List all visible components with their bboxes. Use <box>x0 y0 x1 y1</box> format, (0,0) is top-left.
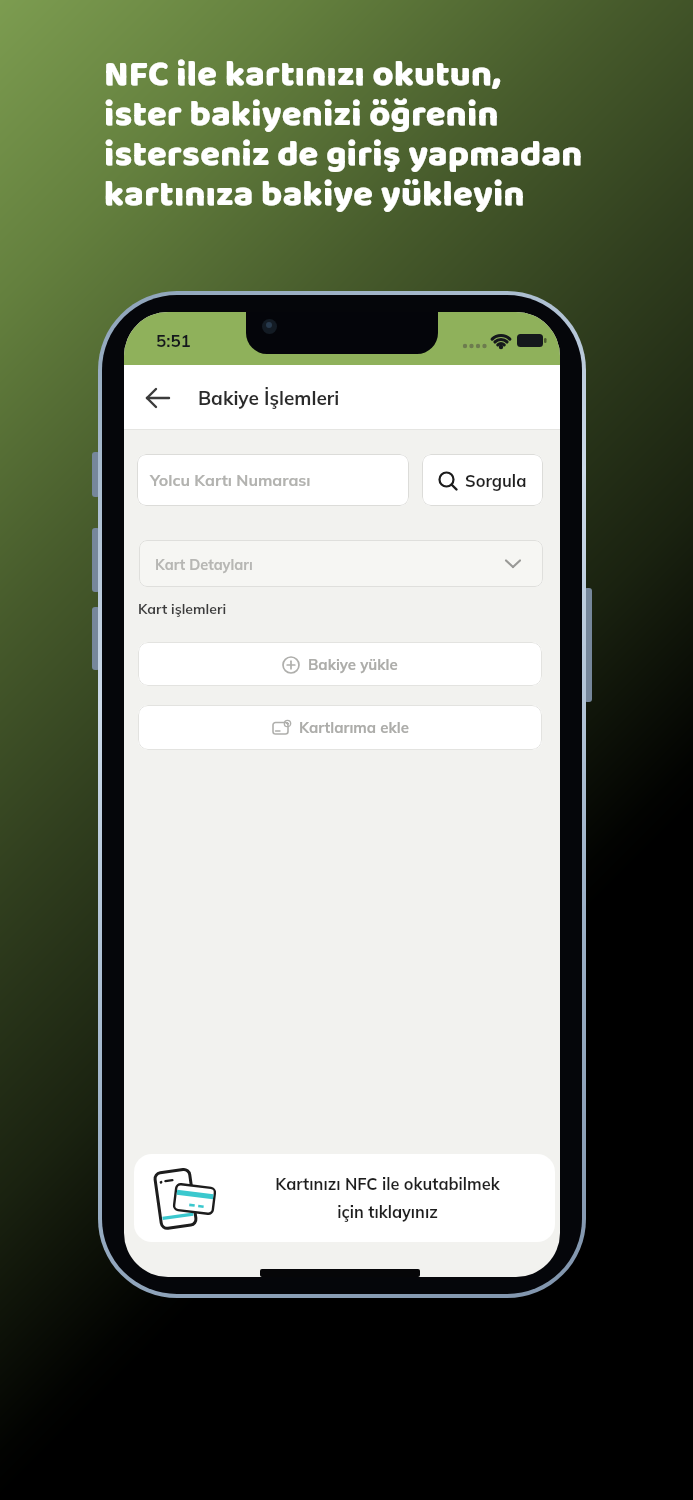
button[interactable]: Kartlarıma ekle <box>138 705 542 750</box>
staticText: 5:51 <box>156 330 191 351</box>
button[interactable]: Bakiye yükle <box>138 642 542 686</box>
staticText: Kart Detayları <box>155 555 253 573</box>
button[interactable]: Yolcu Kartı Numarası <box>137 454 409 506</box>
staticText: Yolcu Kartı Numarası <box>150 470 311 490</box>
button[interactable]: Kartınızı NFC ile okutabilmek için tıkla… <box>134 1154 555 1242</box>
staticText: Kartlarıma ekle <box>299 718 409 737</box>
staticText: Sorgula <box>465 470 527 491</box>
staticText: Bakiye yükle <box>308 655 398 674</box>
staticText: NFC ile kartınızı okutun, ister bakiyeni… <box>104 46 583 223</box>
button[interactable]: Kart Detayları <box>139 540 543 587</box>
button[interactable] <box>138 378 178 418</box>
staticText: Kartınızı NFC ile okutabilmek için tıkla… <box>275 1174 500 1222</box>
staticText: Kart işlemleri <box>138 600 227 618</box>
staticText: Bakiye İşlemleri <box>198 386 340 410</box>
button[interactable]: Sorgula <box>422 454 543 506</box>
